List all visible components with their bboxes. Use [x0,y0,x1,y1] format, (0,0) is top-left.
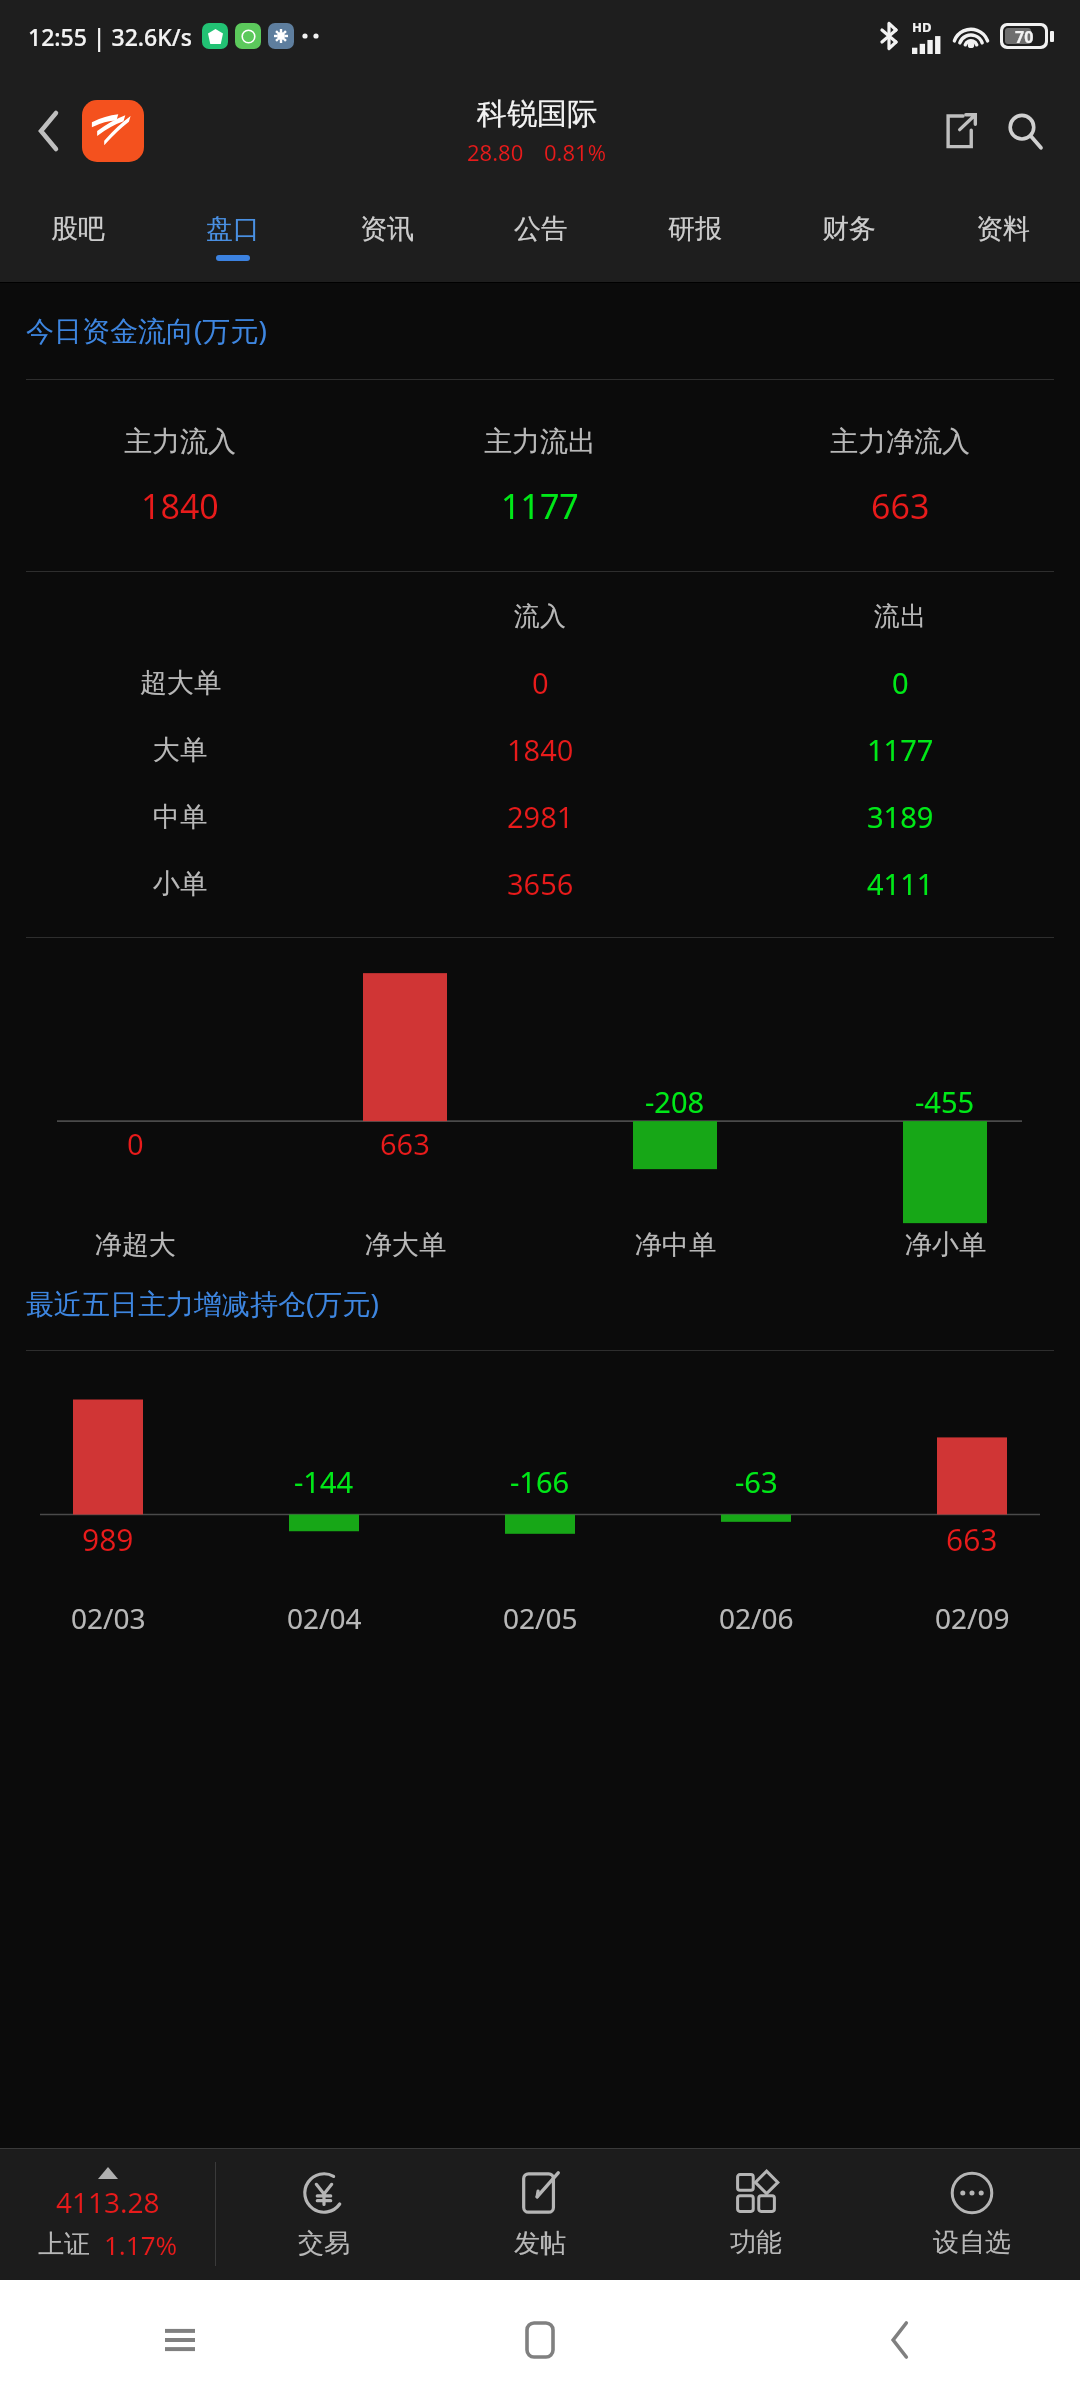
staticText: 3189 [867,797,934,836]
staticText: 1177 [867,730,934,769]
button[interactable]: 设自选 [864,2148,1080,2280]
button[interactable]: App [82,100,144,162]
staticText: 主力净流入 [830,424,970,459]
staticText: -144 [294,1462,354,1501]
staticText: 研报 [668,212,722,246]
staticText: 02/04 [287,1599,362,1637]
staticText: 1177 [501,483,579,529]
button[interactable]: 资讯 [310,190,464,282]
staticText: 3656 [507,864,574,903]
staticText: 主力流出 [484,424,596,459]
staticText: 股吧 [51,212,105,246]
staticText: 1840 [141,483,219,529]
staticText: 流出 [874,600,926,633]
button[interactable]: 公告 [464,190,618,282]
staticText: -63 [735,1462,778,1501]
staticText: 70 [1015,26,1034,46]
staticText: 净小单 [905,1228,986,1262]
button[interactable]: 资料 [926,190,1080,282]
button[interactable]: 财务 [772,190,926,282]
staticText: 科锐国际 [477,95,597,133]
staticText: 中单 [153,800,207,834]
staticText: 28.80 [467,137,524,167]
staticText: 4113.28 [56,2183,160,2221]
button[interactable]: Share [930,102,988,160]
staticText: 02/09 [935,1599,1010,1637]
staticText: -166 [510,1462,570,1501]
staticText: 净大单 [365,1228,446,1262]
button[interactable]: Home [360,2280,720,2400]
staticText: HD [912,18,932,36]
button[interactable]: 交易 [216,2148,432,2280]
staticText: 超大单 [140,666,221,700]
staticText: 663 [946,1519,998,1560]
staticText: 发帖 [514,2227,566,2260]
staticText: 交易 [298,2227,350,2260]
button[interactable]: 发帖 [432,2148,648,2280]
staticText: 02/03 [71,1599,146,1637]
staticText: 设自选 [933,2226,1011,2259]
button[interactable]: Search [996,102,1054,160]
staticText: 2981 [507,797,574,836]
staticText: 02/05 [503,1599,578,1637]
button[interactable]: 4113.28 [0,2148,215,2280]
staticText: 0 [892,663,909,702]
button[interactable]: 功能 [648,2148,864,2280]
staticText: 流入 [514,600,566,633]
staticText: 0.81% [544,137,606,167]
staticText: 0 [127,1124,144,1163]
staticText: 资料 [976,212,1030,246]
staticText: 1840 [507,730,574,769]
button[interactable]: 股吧 [0,190,155,282]
staticText: 净中单 [635,1228,716,1262]
staticText: -208 [645,1082,705,1121]
staticText: 663 [380,1124,430,1163]
staticText: 净超大 [95,1228,176,1262]
staticText: 02/06 [719,1599,794,1637]
button[interactable]: Back [720,2280,1080,2400]
staticText: 大单 [153,733,207,767]
staticText: 1.17% [104,2227,178,2262]
button[interactable]: Back [22,104,76,158]
staticText: 小单 [153,867,207,901]
staticText: 最近五日主力增减持仓(万元) [26,1284,379,1322]
staticText: 上证 [38,2228,90,2261]
staticText: 989 [82,1519,134,1560]
button[interactable]: 研报 [618,190,772,282]
staticText: 主力流入 [124,424,236,459]
staticText: 公告 [514,212,568,246]
staticText: 663 [871,483,930,529]
staticText: 今日资金流向(万元) [26,311,267,349]
staticText: 盘口 [206,212,260,246]
staticText: 资讯 [360,212,414,246]
staticText: 0 [532,663,549,702]
button[interactable]: Recents [0,2280,360,2400]
button[interactable]: 盘口 [155,190,310,282]
staticText: 功能 [730,2226,782,2259]
staticText: 4111 [867,864,934,903]
staticText: 12:55 | 32.6K/s [28,21,192,52]
staticText: -455 [915,1082,975,1121]
staticText: 财务 [822,212,876,246]
